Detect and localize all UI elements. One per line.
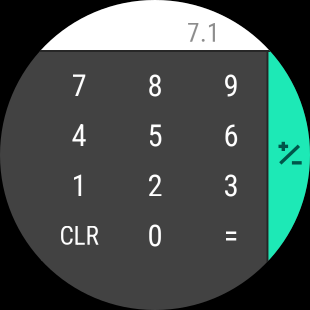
staticText: 8 bbox=[147, 68, 162, 104]
staticText: 7.1 bbox=[187, 18, 220, 48]
staticText: = bbox=[223, 218, 238, 254]
staticText: 6 bbox=[223, 118, 238, 154]
button[interactable]: 6 bbox=[193, 111, 269, 161]
button[interactable]: 5 bbox=[117, 111, 193, 161]
button[interactable]: 4 bbox=[41, 111, 117, 161]
button[interactable]: 1 bbox=[41, 161, 117, 211]
button[interactable]: 7 bbox=[41, 61, 117, 111]
button[interactable]: 3 bbox=[193, 161, 269, 211]
staticText: 4 bbox=[71, 118, 86, 154]
staticText: 1 bbox=[71, 168, 86, 204]
button[interactable]: 9 bbox=[193, 61, 269, 111]
button[interactable]: 0 bbox=[117, 211, 193, 261]
button[interactable]: CLR bbox=[41, 211, 117, 261]
button[interactable]: 2 bbox=[117, 161, 193, 211]
staticText: 0 bbox=[147, 218, 162, 254]
button[interactable]: 8 bbox=[117, 61, 193, 111]
staticText: 3 bbox=[223, 168, 238, 204]
staticText: 5 bbox=[147, 118, 162, 154]
staticText: CLR bbox=[59, 221, 98, 251]
button[interactable]: Toggle sign bbox=[268, 50, 310, 310]
staticText: 2 bbox=[147, 168, 162, 204]
button[interactable]: = bbox=[193, 211, 269, 261]
staticText: 9 bbox=[223, 68, 238, 104]
staticText: 7 bbox=[71, 68, 86, 104]
